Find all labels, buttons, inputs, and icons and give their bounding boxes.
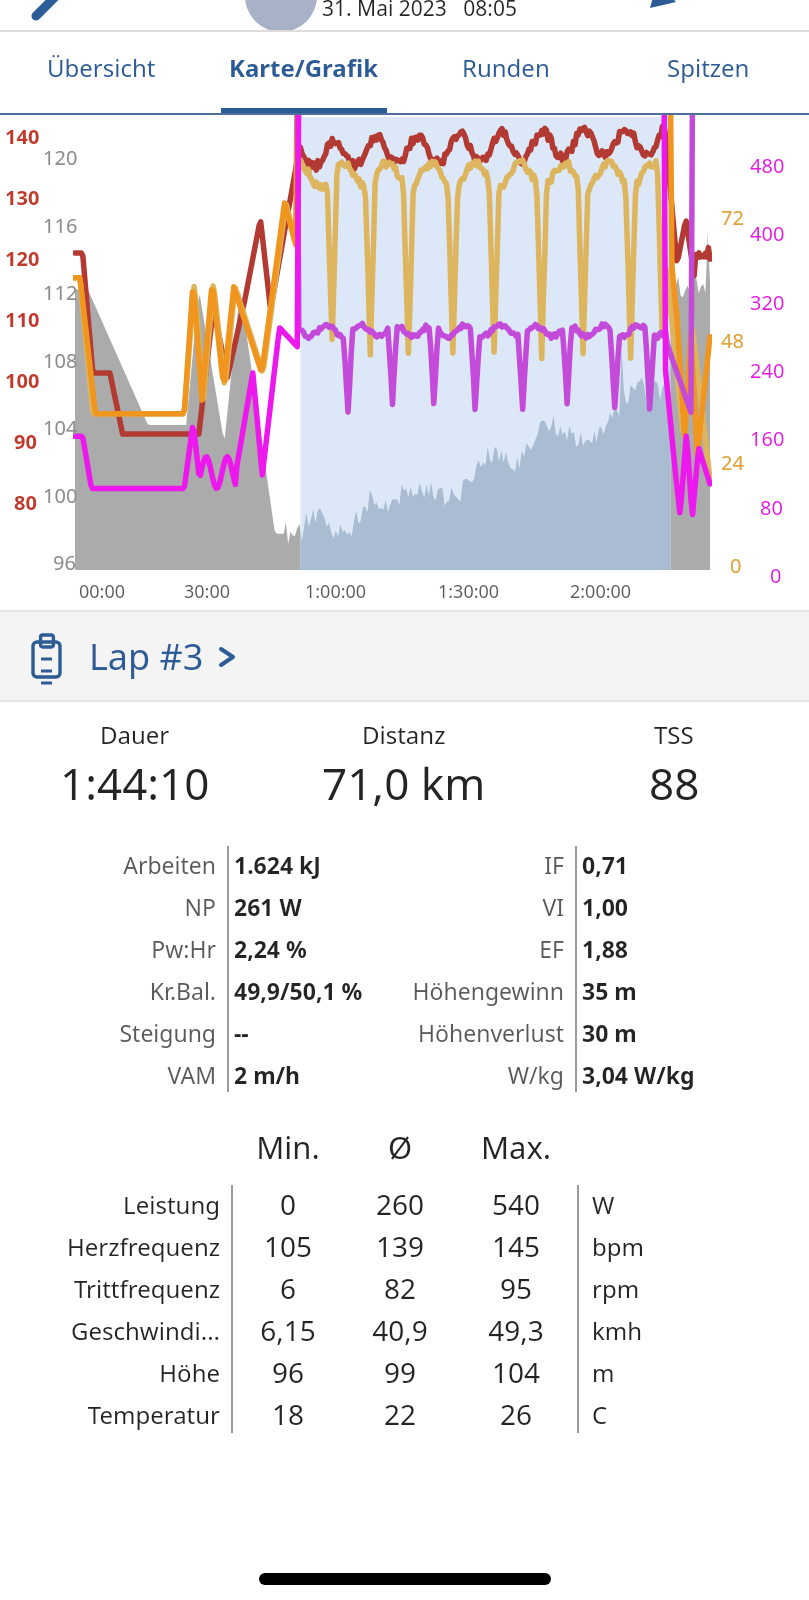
- staticText: 480: [750, 152, 785, 179]
- staticText: 96: [232, 1353, 344, 1391]
- staticText: Dauer: [100, 718, 170, 751]
- staticText: 88: [649, 753, 700, 813]
- staticText: 110: [5, 306, 40, 333]
- button[interactable]: Runden: [405, 32, 607, 115]
- staticText: 105: [232, 1227, 344, 1265]
- staticText: Pw:Hr: [0, 933, 216, 964]
- staticText: 96: [53, 549, 76, 576]
- staticText: 3,04 W/kg: [582, 1059, 695, 1090]
- staticText: W/kg: [384, 1059, 564, 1090]
- button[interactable]: Spitzen: [607, 32, 809, 115]
- staticText: 2 m/h: [234, 1059, 384, 1090]
- staticText: W: [592, 1188, 615, 1221]
- staticText: 49,9/50,1 %: [234, 975, 384, 1006]
- staticText: 1,88: [582, 933, 629, 964]
- staticText: 18: [232, 1395, 344, 1433]
- staticText: 160: [750, 425, 785, 452]
- staticText: 100: [5, 367, 40, 394]
- staticText: TSS: [654, 718, 694, 751]
- staticText: 400: [750, 220, 785, 247]
- staticText: Steigung: [0, 1017, 216, 1048]
- staticText: 261 W: [234, 891, 384, 922]
- staticText: 80: [14, 489, 37, 516]
- staticText: 540: [456, 1185, 576, 1223]
- staticText: 108: [43, 347, 78, 374]
- button[interactable]: Karte/Grafik: [203, 32, 405, 115]
- staticText: 0: [770, 562, 782, 589]
- staticText: IF: [384, 849, 564, 880]
- staticText: 120: [5, 245, 40, 272]
- staticText: Ø: [344, 1126, 456, 1168]
- staticText: 72: [721, 204, 744, 231]
- staticText: Lap #3: [89, 632, 204, 681]
- staticText: Höhe: [0, 1356, 220, 1389]
- staticText: 95: [456, 1269, 576, 1307]
- staticText: 2:00:00: [570, 579, 632, 604]
- staticText: 90: [14, 428, 37, 455]
- staticText: 120: [43, 144, 78, 171]
- staticText: VAM: [0, 1059, 216, 1090]
- staticText: 1,00: [582, 891, 629, 922]
- staticText: Min.: [232, 1126, 344, 1168]
- staticText: bpm: [592, 1230, 644, 1263]
- staticText: Übersicht: [47, 51, 156, 84]
- staticText: Arbeiten: [0, 849, 216, 880]
- staticText: Höhengewinn: [384, 975, 564, 1006]
- staticText: 139: [344, 1227, 456, 1265]
- staticText: 320: [750, 289, 785, 316]
- staticText: 130: [5, 184, 40, 211]
- staticText: 116: [43, 212, 78, 239]
- staticText: NP: [0, 891, 216, 922]
- staticText: 31. Mai 2023 08:05: [322, 0, 517, 23]
- staticText: Temperatur: [0, 1398, 220, 1431]
- staticText: 40,9: [344, 1311, 456, 1349]
- staticText: Herzfrequenz: [0, 1230, 220, 1263]
- staticText: 26: [456, 1395, 576, 1433]
- staticText: Max.: [456, 1126, 576, 1168]
- button[interactable]: Übersicht: [0, 32, 203, 115]
- staticText: 2,24 %: [234, 933, 384, 964]
- staticText: 6,15: [232, 1311, 344, 1349]
- button[interactable]: Lap #3: [0, 610, 809, 702]
- staticText: 30:00: [184, 579, 231, 604]
- staticText: 99: [344, 1353, 456, 1391]
- staticText: Geschwindi...: [0, 1314, 220, 1347]
- staticText: 260: [344, 1185, 456, 1223]
- staticText: 0,71: [582, 849, 629, 880]
- staticText: Trittfrequenz: [0, 1272, 220, 1305]
- staticText: C: [592, 1398, 608, 1431]
- staticText: 1.624 kJ: [234, 849, 384, 880]
- staticText: m: [592, 1356, 615, 1389]
- staticText: 6: [232, 1269, 344, 1307]
- staticText: Runden: [462, 51, 550, 84]
- staticText: 104: [456, 1353, 576, 1391]
- staticText: Leistung: [0, 1188, 220, 1221]
- staticText: 0: [232, 1185, 344, 1223]
- staticText: Höhenverlust: [384, 1017, 564, 1048]
- staticText: Spitzen: [667, 51, 750, 84]
- staticText: 240: [750, 357, 785, 384]
- staticText: 1:30:00: [438, 579, 500, 604]
- staticText: 35 m: [582, 975, 637, 1006]
- staticText: EF: [384, 933, 564, 964]
- staticText: 104: [43, 414, 78, 441]
- staticText: 140: [5, 123, 40, 150]
- staticText: 22: [344, 1395, 456, 1433]
- staticText: 30 m: [582, 1017, 637, 1048]
- staticText: Distanz: [362, 718, 446, 751]
- staticText: --: [234, 1017, 384, 1048]
- staticText: 71,0 km: [322, 753, 486, 813]
- staticText: VI: [384, 891, 564, 922]
- staticText: Karte/Grafik: [229, 51, 379, 84]
- staticText: 112: [43, 279, 78, 306]
- staticText: 24: [721, 449, 744, 476]
- staticText: 82: [344, 1269, 456, 1307]
- staticText: 48: [721, 327, 744, 354]
- staticText: 49,3: [456, 1311, 576, 1349]
- staticText: 80: [760, 494, 783, 521]
- staticText: Kr.Bal.: [0, 975, 216, 1006]
- staticText: 1:44:10: [60, 753, 210, 813]
- staticText: rpm: [592, 1272, 640, 1305]
- staticText: 145: [456, 1227, 576, 1265]
- staticText: 00:00: [79, 579, 126, 604]
